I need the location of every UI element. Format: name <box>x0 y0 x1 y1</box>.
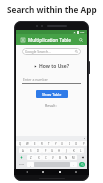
staticText: Enter a number <box>23 77 48 82</box>
button[interactable]: Recent apps <box>57 169 63 175</box>
button[interactable]: Back <box>24 169 30 175</box>
staticText: 1:05 <box>80 31 85 34</box>
button[interactable]: C <box>42 155 49 160</box>
button[interactable]: M <box>70 155 77 160</box>
button[interactable]: Open navigation menu <box>19 36 26 43</box>
button[interactable]: S <box>27 148 35 153</box>
button[interactable]: , <box>27 162 34 167</box>
button[interactable]: T <box>45 141 52 146</box>
staticText: Result : <box>45 103 58 108</box>
staticText: ?123 <box>19 163 24 166</box>
staticText: Show Table <box>42 92 62 97</box>
staticText: How to Use? <box>39 63 70 70</box>
staticText: K <box>73 149 75 153</box>
button[interactable]: Q <box>16 141 24 146</box>
button[interactable]: Symbols <box>16 162 27 167</box>
button[interactable]: W <box>24 141 31 146</box>
staticText: Z <box>30 156 32 160</box>
button[interactable]: H <box>56 148 63 153</box>
button[interactable]: K <box>70 148 77 153</box>
button[interactable]: F <box>42 148 49 153</box>
staticText: D <box>37 149 40 153</box>
staticText: . <box>73 163 74 167</box>
staticText: B <box>59 156 61 160</box>
staticText: Y <box>55 142 57 146</box>
staticText: J <box>66 149 67 153</box>
staticText: Multiplication Table <box>28 37 77 43</box>
staticText: O <box>75 142 78 146</box>
staticText: A <box>22 149 24 153</box>
button[interactable]: X <box>35 155 42 160</box>
staticText: I <box>69 142 70 146</box>
button[interactable]: . <box>70 162 77 167</box>
staticText: G <box>51 149 54 153</box>
button[interactable]: Home <box>40 169 46 175</box>
button[interactable]: G <box>49 148 56 153</box>
button[interactable]: Google Search... <box>22 48 81 55</box>
staticText: Google Search... <box>25 49 75 54</box>
staticText: P <box>83 142 85 146</box>
staticText: C <box>45 156 47 160</box>
staticText: W <box>26 142 29 146</box>
button[interactable]: N <box>63 155 70 160</box>
button[interactable]: Shift <box>16 155 27 160</box>
button[interactable]: Search <box>77 36 84 43</box>
button[interactable]: A <box>19 148 27 153</box>
button[interactable]: Search <box>79 162 85 167</box>
button[interactable]: Show Table <box>36 90 68 98</box>
staticText: M <box>72 156 75 160</box>
button[interactable]: U <box>59 141 66 146</box>
button[interactable]: Y <box>52 141 59 146</box>
staticText: T <box>48 142 50 146</box>
staticText: F <box>45 149 47 153</box>
staticText: S <box>30 149 32 153</box>
button[interactable]: L <box>77 148 84 153</box>
button[interactable]: J <box>63 148 70 153</box>
staticText: , <box>30 163 31 167</box>
staticText: Search within the App <box>7 4 97 15</box>
button[interactable]: R <box>38 141 45 146</box>
staticText: Q <box>19 142 22 146</box>
button[interactable]: Backspace <box>77 155 87 160</box>
staticText: H <box>58 149 61 153</box>
staticText: N <box>65 156 68 160</box>
button[interactable]: V <box>49 155 56 160</box>
button[interactable]: O <box>73 141 80 146</box>
button[interactable]: D <box>35 148 42 153</box>
staticText: U <box>61 142 64 146</box>
staticText: X <box>38 156 40 160</box>
staticText: R <box>41 142 43 146</box>
button[interactable]: I <box>66 141 73 146</box>
staticText: E <box>34 142 36 146</box>
button[interactable]: Hide keyboard <box>73 169 79 175</box>
staticText: L <box>80 149 82 153</box>
button[interactable]: How to Use? <box>32 62 72 71</box>
button[interactable]: P <box>80 141 87 146</box>
button[interactable]: Z <box>27 155 35 160</box>
button[interactable]: B <box>56 155 63 160</box>
button[interactable]: Enter a number <box>22 77 81 84</box>
staticText: V <box>52 156 54 160</box>
button[interactable]: E <box>31 141 38 146</box>
